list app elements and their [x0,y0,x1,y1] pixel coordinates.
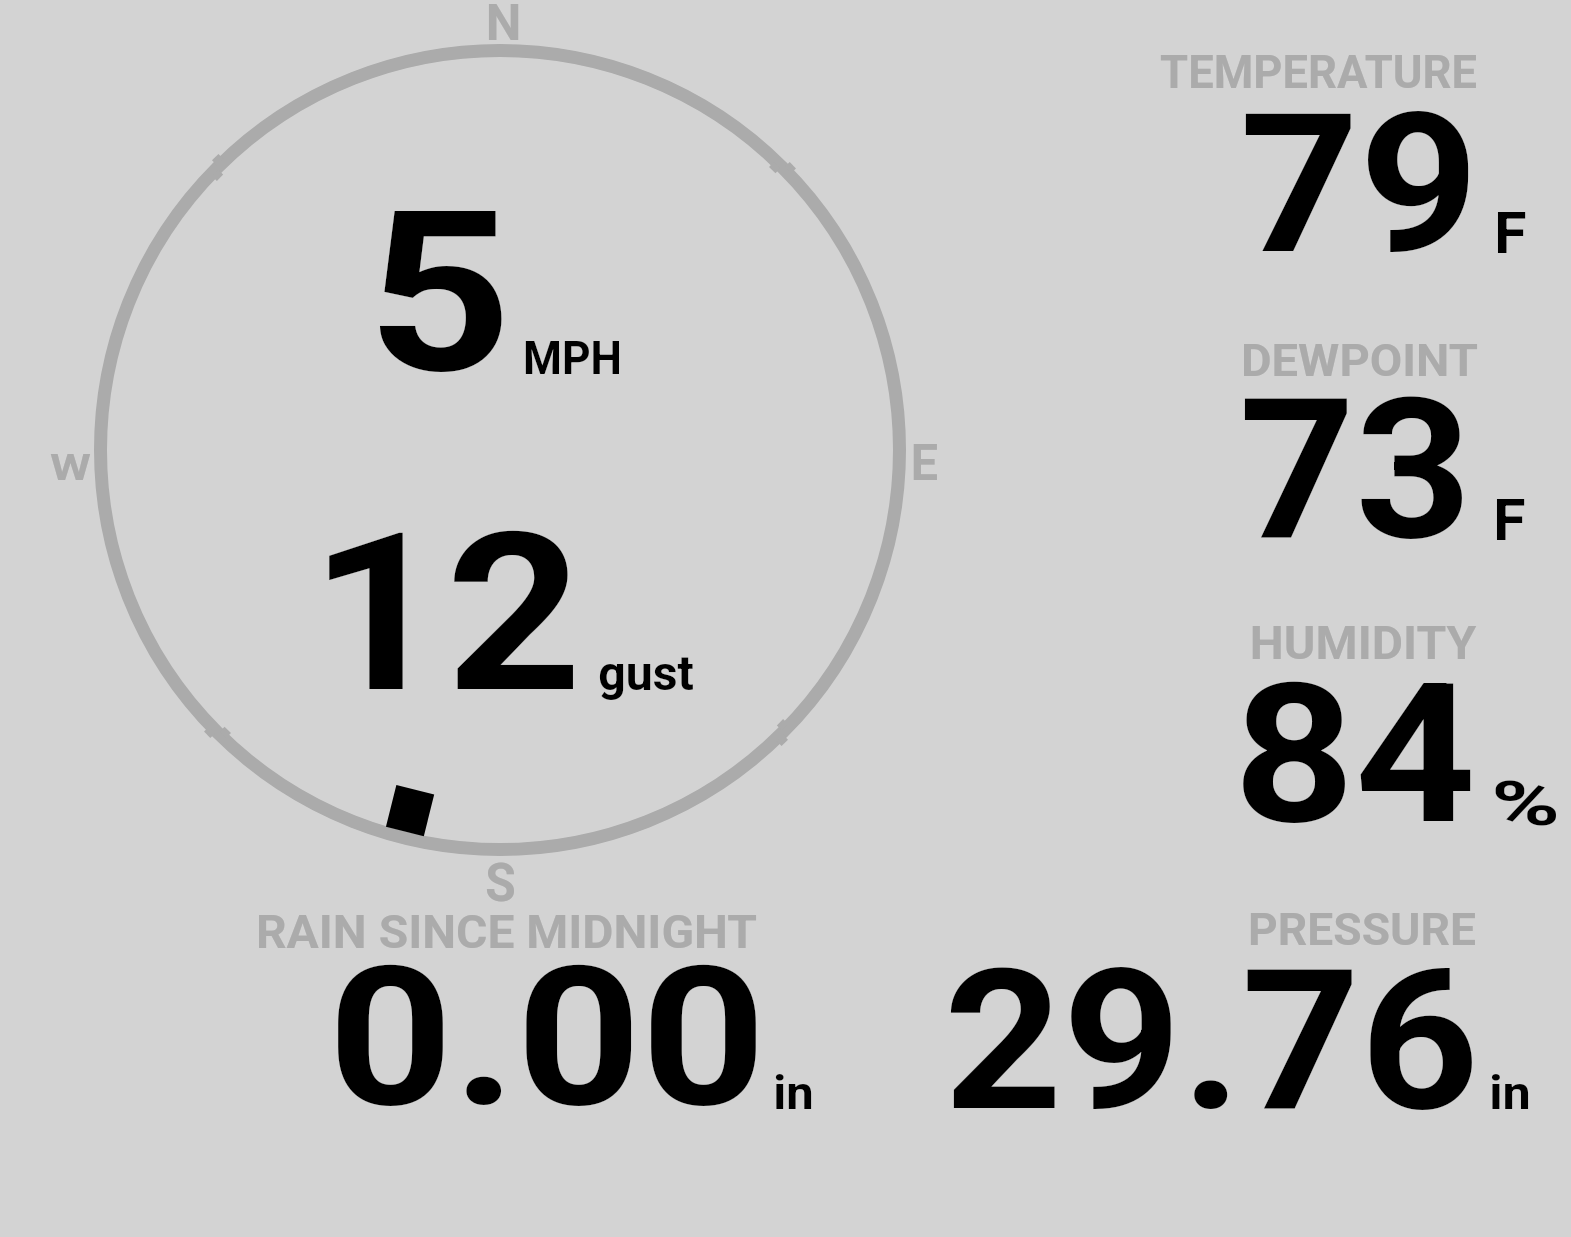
button[interactable]: Pressure 29.76 inches [930,898,1571,1123]
button[interactable]: Temperature 79 degrees Fahrenheit [1140,40,1571,270]
button[interactable]: Dew point 73 degrees Fahrenheit [1140,325,1571,555]
button[interactable]: Rain since midnight 0.00 inches [240,898,840,1123]
button[interactable]: Humidity 84 percent [1140,608,1571,838]
button[interactable]: Wind 5 miles per hour gusting 12, from t… [94,44,906,856]
